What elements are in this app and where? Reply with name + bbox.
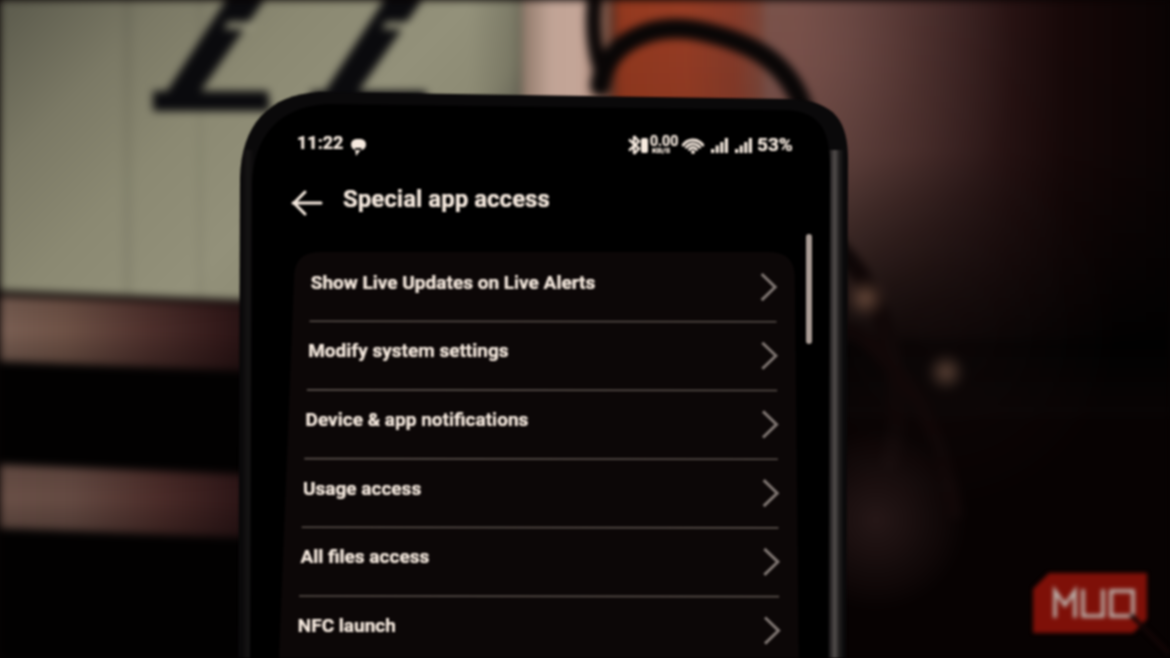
button[interactable] xyxy=(287,456,795,523)
button[interactable] xyxy=(287,253,795,320)
button[interactable] xyxy=(287,321,795,388)
button[interactable]: Back xyxy=(286,184,332,230)
button[interactable] xyxy=(287,591,795,658)
button[interactable] xyxy=(287,388,795,455)
button[interactable] xyxy=(287,523,795,590)
